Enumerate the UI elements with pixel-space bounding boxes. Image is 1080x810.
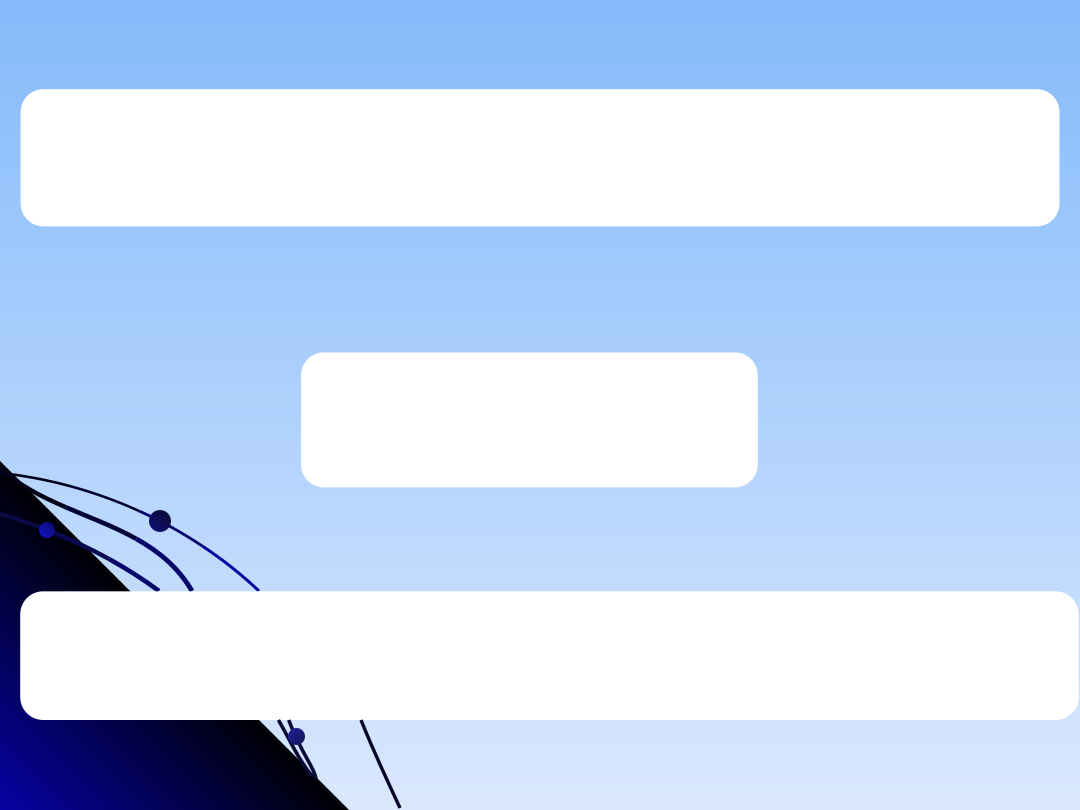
button[interactable] bbox=[20, 591, 1079, 720]
button[interactable] bbox=[21, 89, 1059, 226]
button[interactable] bbox=[301, 352, 758, 487]
